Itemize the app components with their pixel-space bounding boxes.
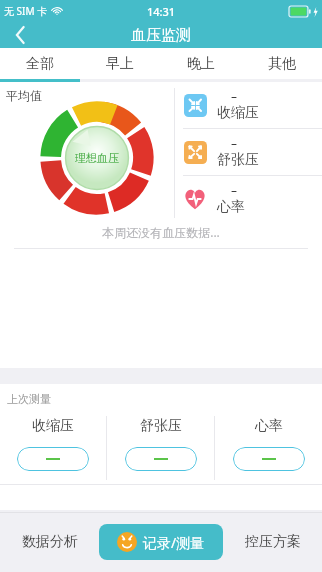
button[interactable]: – — [175, 82, 322, 128]
staticText: 收缩压 — [32, 417, 74, 435]
staticText: 本周还没有血压数据... — [0, 224, 322, 240]
staticText: 无 SIM 卡 — [4, 4, 48, 18]
staticText: 心率 — [255, 417, 283, 435]
staticText: 舒张压 — [140, 417, 182, 435]
button[interactable]: 其他 — [241, 48, 322, 79]
staticText: 舒张压 — [217, 151, 259, 169]
staticText: 全部 — [26, 55, 54, 73]
staticText: 心率 — [217, 198, 245, 216]
staticText: 收缩压 — [217, 104, 259, 122]
staticText: 晚上 — [187, 55, 215, 73]
staticText: 数据分析 — [22, 533, 78, 551]
staticText: 其他 — [268, 55, 296, 73]
button[interactable]: 数据分析 — [0, 512, 99, 572]
button[interactable]: 晚上 — [160, 48, 241, 79]
staticText: – — [231, 135, 238, 151]
button[interactable]: 早上 — [80, 48, 160, 79]
button[interactable]: 全部 — [0, 48, 80, 79]
staticText: 早上 — [106, 55, 134, 73]
staticText: 理想血压 — [75, 151, 119, 165]
button[interactable]: – — [175, 176, 322, 222]
button[interactable]: 收缩压 — [0, 412, 106, 484]
button[interactable]: 控压方案 — [223, 512, 322, 572]
staticText: 平均值 — [6, 88, 42, 103]
staticText: 血压监测 — [131, 26, 191, 45]
staticText: 14:31 — [147, 4, 176, 19]
staticText: – — [231, 182, 238, 198]
button[interactable]: 记录/测量 — [99, 524, 223, 560]
staticText: 记录/测量 — [143, 533, 205, 552]
button[interactable]: Back — [0, 22, 40, 48]
button[interactable]: 心率 — [215, 412, 322, 484]
staticText: 上次测量 — [7, 392, 51, 406]
button[interactable]: 舒张压 — [107, 412, 214, 484]
staticText: – — [231, 88, 238, 104]
staticText: 控压方案 — [245, 533, 301, 551]
button[interactable]: – — [175, 129, 322, 175]
